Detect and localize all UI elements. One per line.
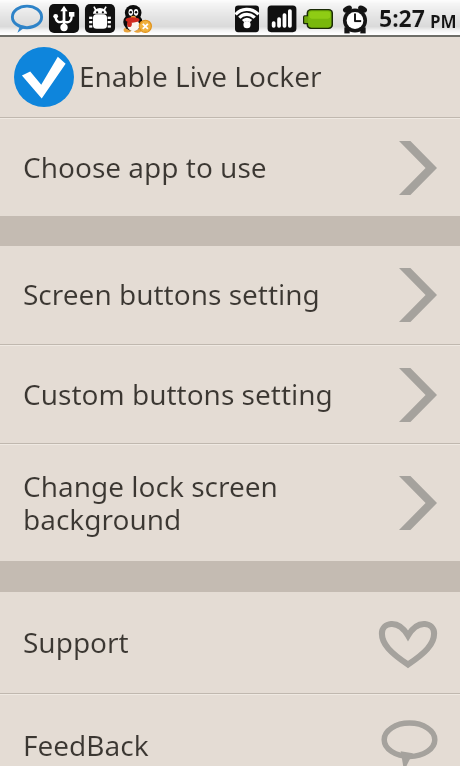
button[interactable]: FeedBack (0, 695, 460, 766)
staticText: Custom buttons setting (23, 375, 399, 413)
staticText: Enable Live Locker (79, 57, 322, 95)
staticText: 5:27 (379, 2, 425, 33)
staticText: PM (430, 10, 457, 33)
button[interactable]: Support (0, 592, 460, 693)
staticText: FeedBack (23, 726, 382, 764)
button[interactable]: Change lock screen background (0, 445, 460, 561)
staticText: Choose app to use (23, 148, 399, 186)
button[interactable]: Custom buttons setting (0, 346, 460, 443)
staticText: Screen buttons setting (23, 275, 399, 313)
button[interactable]: Choose app to use (0, 119, 460, 216)
button[interactable]: Enable Live Locker toggle, checked (14, 47, 74, 107)
button[interactable]: Enable Live Locker toggle, checked (0, 37, 460, 117)
staticText: Change lock screen background (23, 467, 399, 538)
button[interactable]: Screen buttons setting (0, 246, 460, 344)
staticText: Support (23, 623, 379, 661)
